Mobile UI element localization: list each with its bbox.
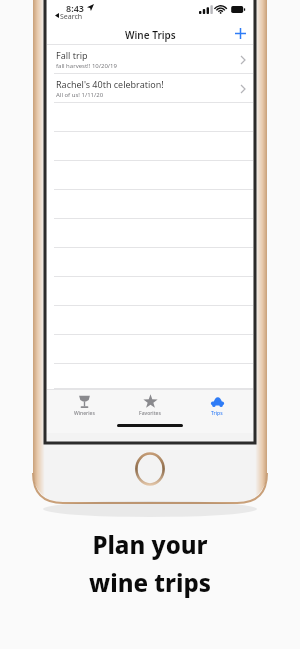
button[interactable]: Wineries bbox=[54, 390, 114, 421]
button[interactable]: Rachel's 40th celebration! bbox=[47, 74, 253, 103]
staticText: Trips bbox=[211, 410, 223, 417]
staticText: Wine Trips bbox=[125, 28, 176, 42]
staticText: wine trips bbox=[89, 566, 211, 599]
button[interactable]: Home bbox=[133, 452, 167, 486]
staticText: Rachel's 40th celebration! bbox=[56, 78, 164, 90]
button[interactable]: Favorites bbox=[120, 390, 180, 421]
staticText: All of us! 1/11/20 bbox=[56, 91, 104, 99]
staticText: Favorites bbox=[139, 410, 161, 417]
staticText: Wineries bbox=[74, 410, 95, 417]
staticText: 8:43 bbox=[66, 2, 84, 14]
staticText: Search bbox=[60, 12, 83, 22]
button[interactable]: Fall trip bbox=[47, 45, 253, 74]
staticText: fall harvest!! 10/20/19 bbox=[56, 62, 117, 70]
staticText: Fall trip bbox=[56, 49, 88, 61]
button[interactable]: Add trip bbox=[227, 22, 253, 45]
staticText: Plan your bbox=[92, 528, 208, 561]
button[interactable]: Trips bbox=[187, 390, 247, 421]
